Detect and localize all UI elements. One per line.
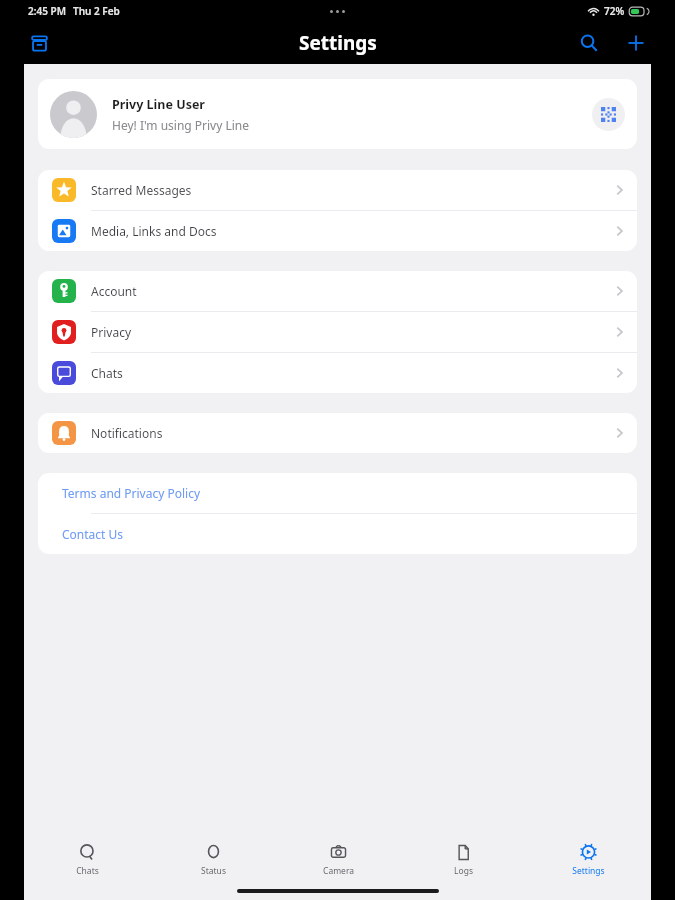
button[interactable]: Account	[38, 271, 637, 311]
staticText: 72%	[604, 4, 625, 18]
staticText: Settings	[299, 30, 377, 56]
button[interactable]: Chats	[24, 838, 150, 882]
button[interactable]: Show QR code	[592, 98, 625, 131]
button[interactable]: Privacy	[38, 312, 637, 352]
staticText: Privy Line User	[112, 96, 205, 113]
staticText: Hey! I'm using Privy Line	[112, 117, 250, 133]
button[interactable]: Archived chats	[22, 26, 56, 60]
button[interactable]: Settings	[526, 838, 651, 882]
staticText: Logs	[454, 865, 473, 877]
button[interactable]: Terms and Privacy Policy	[38, 473, 637, 513]
staticText: Media, Links and Docs	[91, 223, 616, 239]
staticText: Settings	[572, 865, 605, 877]
staticText: Chats	[76, 865, 99, 877]
staticText: Status	[201, 865, 226, 877]
button[interactable]: Media, Links and Docs	[38, 211, 637, 251]
button[interactable]: Logs	[401, 838, 526, 882]
staticText: Privacy	[91, 324, 616, 340]
button[interactable]: Chats	[38, 353, 637, 393]
button[interactable]: Contact Us	[38, 514, 637, 554]
button[interactable]: Status	[150, 838, 276, 882]
button[interactable]: Privy Line User	[38, 79, 637, 149]
staticText: Contact Us	[62, 526, 124, 542]
button[interactable]: New chat	[619, 26, 653, 60]
button[interactable]: Starred Messages	[38, 170, 637, 210]
button[interactable]: Search	[572, 26, 606, 60]
staticText: 2:45 PM	[28, 4, 66, 18]
staticText: Camera	[323, 865, 354, 877]
staticText: Chats	[91, 365, 616, 381]
button[interactable]: Notifications	[38, 413, 637, 453]
staticText: Account	[91, 283, 616, 299]
staticText: Thu 2 Feb	[73, 4, 120, 18]
staticText: Starred Messages	[91, 182, 616, 198]
button[interactable]: Camera	[276, 838, 401, 882]
staticText: Terms and Privacy Policy	[62, 485, 201, 501]
staticText: Notifications	[91, 425, 616, 441]
